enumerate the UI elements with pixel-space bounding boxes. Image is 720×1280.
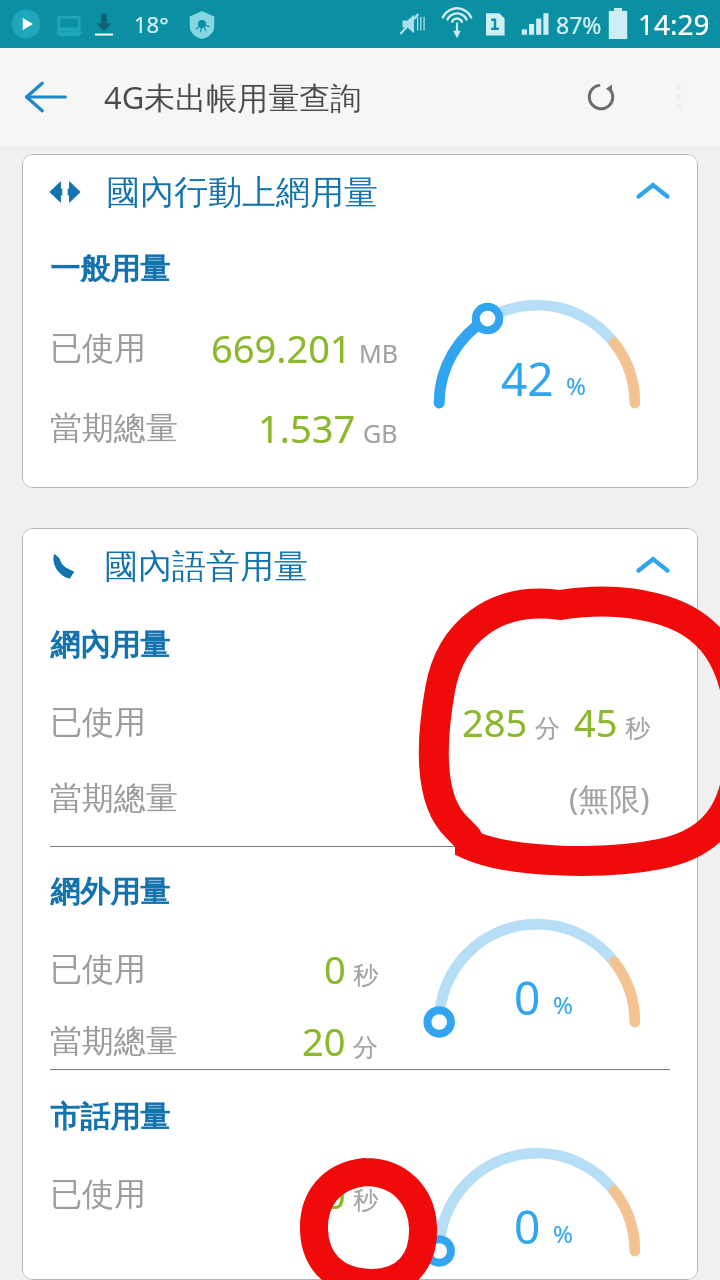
staticText: 1.537 bbox=[258, 402, 356, 454]
button[interactable]: 國內語音用量 bbox=[22, 528, 698, 604]
staticText: 20 bbox=[302, 1015, 346, 1067]
staticText: 秒 bbox=[353, 960, 378, 991]
staticText: % bbox=[566, 369, 586, 402]
staticText: 已使用 bbox=[50, 702, 146, 742]
staticText: 14:29 bbox=[638, 5, 710, 43]
staticText: 當期總量 bbox=[50, 778, 178, 818]
staticText: 已使用 bbox=[50, 949, 146, 989]
staticText: 已使用 bbox=[50, 1174, 146, 1214]
other: Collapse section bbox=[634, 173, 672, 211]
button[interactable]: 國內行動上網用量 bbox=[22, 154, 698, 230]
button[interactable]: Back bbox=[12, 64, 78, 130]
staticText: 42 bbox=[501, 347, 554, 410]
staticText: 網內用量 bbox=[50, 626, 170, 664]
staticText: GB bbox=[363, 416, 398, 450]
other: Collapse section bbox=[634, 547, 672, 585]
staticText: 285 bbox=[462, 696, 528, 748]
staticText: 669.201 bbox=[211, 322, 352, 374]
staticText: 18° bbox=[134, 9, 169, 39]
staticText: 網外用量 bbox=[50, 873, 170, 911]
staticText: 0 bbox=[324, 943, 346, 995]
staticText: 市話用量 bbox=[50, 1098, 170, 1136]
staticText: 秒 bbox=[625, 713, 650, 744]
staticText: 秒 bbox=[353, 1185, 378, 1216]
staticText: 一般用量 bbox=[50, 250, 170, 288]
staticText: 45 bbox=[574, 696, 618, 748]
staticText: 4G未出帳用量查詢 bbox=[104, 76, 362, 118]
staticText: 87% bbox=[556, 9, 602, 40]
staticText: % bbox=[553, 1217, 573, 1250]
staticText: % bbox=[553, 988, 573, 1021]
button[interactable]: Refresh bbox=[568, 64, 634, 130]
staticText: 0 bbox=[514, 1195, 541, 1258]
staticText: (無限) bbox=[569, 777, 650, 819]
staticText: 0 bbox=[324, 1168, 346, 1220]
staticText: 國內行動上網用量 bbox=[106, 171, 378, 214]
staticText: 0 bbox=[514, 966, 541, 1029]
staticText: 當期總量 bbox=[50, 408, 178, 448]
staticText: 分 bbox=[353, 1032, 378, 1063]
staticText: 國內語音用量 bbox=[104, 545, 308, 588]
staticText: 當期總量 bbox=[50, 1021, 178, 1061]
staticText: 分 bbox=[535, 713, 560, 744]
staticText: 已使用 bbox=[50, 328, 146, 368]
staticText: MB bbox=[359, 336, 398, 370]
